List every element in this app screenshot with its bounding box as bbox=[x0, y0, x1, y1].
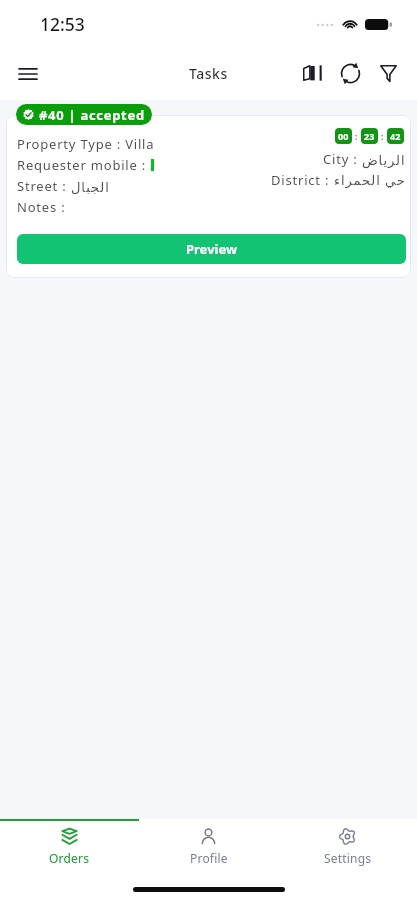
staticText: District : bbox=[271, 171, 334, 189]
staticText: : bbox=[355, 130, 358, 142]
staticText: Requester mobile : bbox=[17, 156, 151, 174]
staticText: Settings bbox=[324, 850, 372, 866]
staticText: Preview bbox=[186, 240, 238, 258]
button[interactable]: Map bbox=[293, 54, 331, 92]
button[interactable]: Filter bbox=[369, 54, 407, 92]
button[interactable]: Profile bbox=[139, 821, 278, 872]
staticText: Street : bbox=[17, 177, 71, 195]
button[interactable]: #40 | accepted bbox=[16, 104, 152, 125]
staticText: 00 bbox=[338, 130, 349, 142]
staticText: City : bbox=[323, 150, 362, 168]
staticText: الجبال bbox=[71, 180, 110, 195]
staticText: Property Type : Villa bbox=[17, 135, 155, 153]
button[interactable]: Menu bbox=[8, 54, 48, 94]
staticText: 12:53 bbox=[40, 12, 85, 36]
button[interactable]: Refresh bbox=[331, 54, 369, 92]
staticText: Orders bbox=[49, 850, 90, 866]
staticText: 23 bbox=[364, 130, 375, 142]
button[interactable]: Orders bbox=[0, 821, 139, 872]
button[interactable]: Settings bbox=[278, 821, 417, 872]
staticText: Tasks bbox=[189, 64, 228, 83]
staticText: حي الحمراء bbox=[334, 171, 406, 189]
button[interactable]: Preview bbox=[17, 234, 406, 264]
staticText: #40 | accepted bbox=[39, 106, 145, 124]
button[interactable]: Property Type : Villa bbox=[6, 115, 411, 278]
staticText: Profile bbox=[190, 850, 228, 866]
staticText: 42 bbox=[390, 130, 401, 142]
staticText: Notes : bbox=[17, 198, 66, 216]
staticText: : bbox=[381, 130, 384, 142]
staticText: الرياض bbox=[362, 153, 406, 168]
